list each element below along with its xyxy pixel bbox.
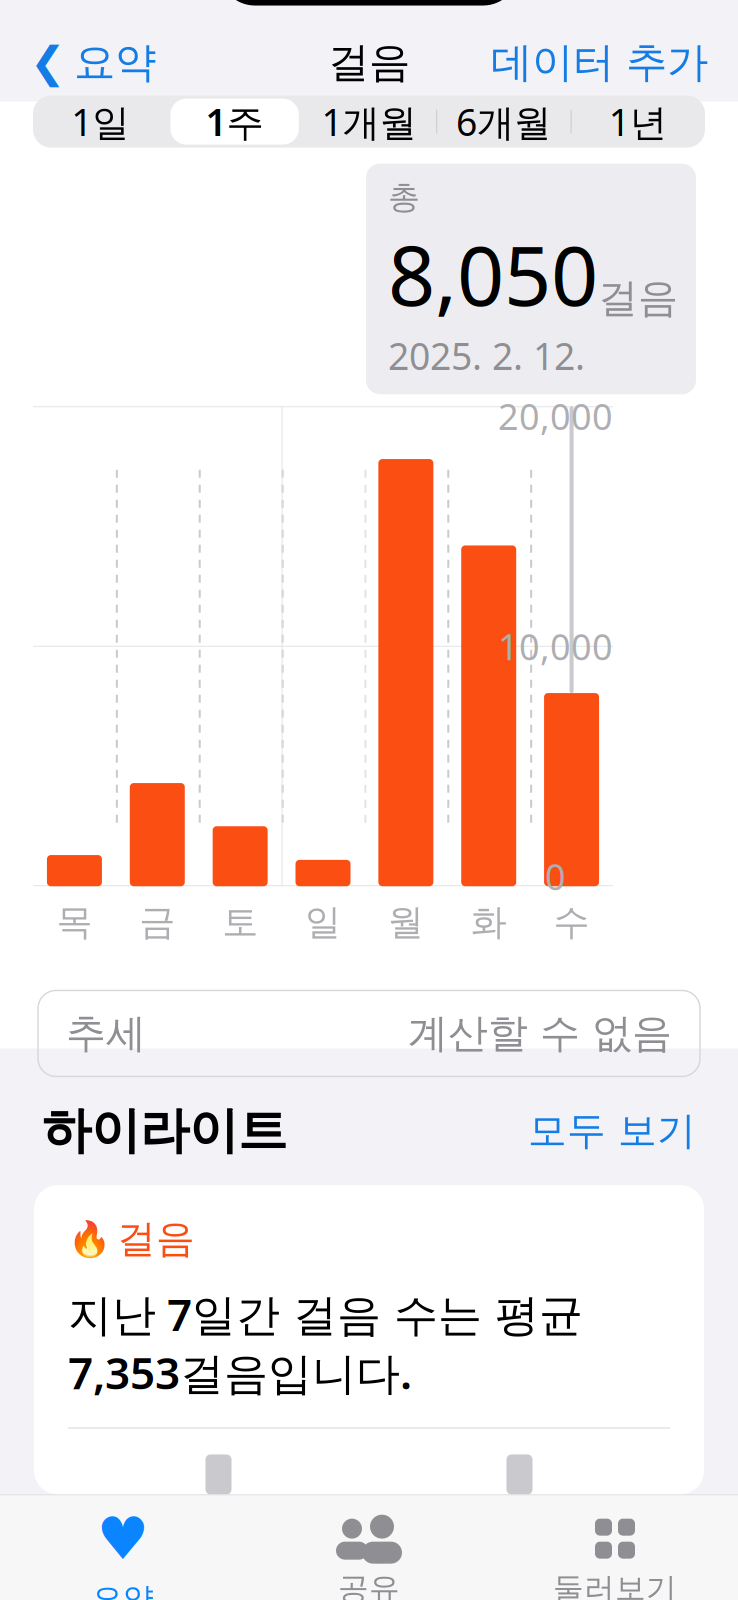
staticText: 1일 [71,97,129,146]
staticText: 0 [545,852,566,900]
staticText: 토 [222,900,258,944]
staticText: ♥ [96,1505,149,1572]
staticText: 6개월 [456,97,551,146]
staticText: 걸음 [598,273,678,323]
staticText: 10,000 [498,622,613,670]
button[interactable]: 둘러보기 [492,1502,738,1600]
staticText: 계산할 수 없음 [408,1009,672,1058]
button[interactable]: 1년 [571,96,705,148]
button[interactable]: 1일 [33,96,167,148]
staticText: 8,050 [388,219,598,329]
staticText: 20,000 [498,392,613,440]
staticText: 지난 7일간 걸음 수는 평균 7,353걸음입니다. [68,1285,583,1401]
staticText: 추세 [66,1009,146,1058]
staticText: 요약 [74,37,156,88]
staticText: 공유 [338,1570,400,1600]
button[interactable]: 1주 [167,96,302,148]
staticText: 1개월 [321,97,416,146]
staticText: 🔥 [68,1219,111,1259]
staticText: 걸음 [328,37,410,88]
staticText: 금 [139,900,175,944]
button[interactable]: ❮ [12,27,174,98]
staticText: 데이터 추가 [491,37,708,88]
staticText: 요약 [92,1580,154,1600]
staticText: 1주 [206,97,264,146]
staticText: 걸음 [117,1215,195,1263]
button[interactable]: 공유 [246,1502,492,1600]
staticText: 월 [388,900,424,944]
staticText: 1년 [609,97,667,146]
button[interactable]: 6개월 [436,96,571,148]
staticText: 일 [305,900,341,944]
button[interactable]: 데이터 추가 [473,27,726,98]
button[interactable]: 모두 보기 [512,1101,696,1161]
staticText: 총 [388,178,420,217]
button[interactable]: 1개월 [302,96,436,148]
staticText: 2025. 2. 12. [388,331,585,380]
staticText: 목 [56,900,92,944]
staticText: 수 [554,900,590,944]
staticText: 화 [471,900,507,944]
button[interactable]: 추세 [38,990,700,1076]
button[interactable]: 🔥 [34,1185,704,1494]
staticText: 둘러보기 [553,1570,677,1600]
staticText: 하이라이트 [42,1100,287,1161]
staticText: ❮ [30,38,66,87]
button[interactable]: ♥ [0,1491,246,1600]
staticText: 모두 보기 [528,1107,696,1155]
